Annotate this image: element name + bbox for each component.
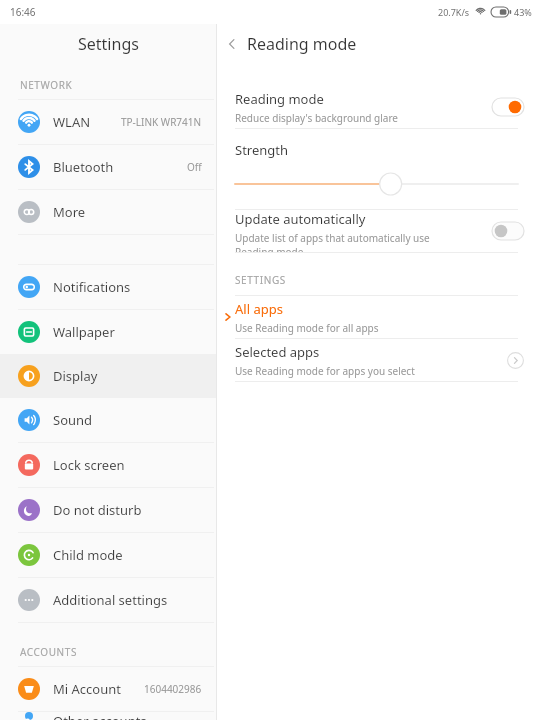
button[interactable]: Display (0, 354, 216, 398)
other: Do not disturb (18, 499, 40, 521)
button[interactable]: Back (217, 29, 247, 59)
staticText: Update list of apps that automatically u… (235, 231, 470, 252)
button[interactable]: Wallpaper (0, 310, 216, 354)
button[interactable]: Toggle on (492, 98, 524, 116)
staticText: Settings (78, 33, 139, 55)
staticText: Additional settings (53, 591, 168, 609)
staticText: 16:46 (10, 5, 36, 19)
staticText: Bluetooth (53, 158, 114, 176)
staticText: Use Reading mode for apps you select (235, 364, 415, 378)
other: More (18, 201, 40, 223)
other: WLAN (18, 111, 40, 133)
staticText: Child mode (53, 546, 123, 564)
staticText: 20.7K/s (438, 6, 470, 18)
other: Wallpaper (18, 321, 40, 343)
other: Bluetooth (18, 156, 40, 178)
staticText: Use Reading mode for all apps (235, 321, 379, 335)
staticText: Selected apps (235, 343, 320, 361)
staticText: NETWORK (20, 78, 73, 92)
staticText: WLAN (53, 113, 91, 131)
other: Notifications (18, 276, 40, 298)
staticText: Mi Account (53, 680, 121, 698)
other: Additional settings (18, 589, 40, 611)
button[interactable]: Mi Account (0, 667, 216, 711)
staticText: Strength (235, 141, 289, 159)
staticText: Sound (53, 411, 93, 429)
button[interactable]: Bluetooth (0, 145, 216, 189)
staticText: Display (53, 367, 98, 385)
other: Display (18, 365, 40, 387)
other: Sound (18, 409, 40, 431)
button[interactable]: Additional settings (0, 578, 216, 622)
other: Child mode (18, 544, 40, 566)
button[interactable]: Update automatically (217, 210, 540, 252)
staticText: 1604402986 (144, 682, 202, 696)
staticText: Reading mode (235, 90, 324, 108)
staticText: Wallpaper (53, 323, 115, 341)
button[interactable]: Open selected apps (507, 352, 524, 369)
button[interactable]: Child mode (0, 533, 216, 577)
button[interactable]: Sound (0, 398, 216, 442)
button[interactable]: Lock screen (0, 443, 216, 487)
staticText: Reading mode (247, 33, 357, 55)
staticText: Lock screen (53, 456, 125, 474)
button[interactable]: Notifications (0, 265, 216, 309)
other: Lock screen (18, 454, 40, 476)
staticText: Reduce display's background glare (235, 111, 398, 125)
button[interactable]: Selected apps (217, 339, 540, 381)
staticText: 43% (514, 6, 532, 18)
staticText: Update automatically (235, 210, 366, 228)
staticText: All apps (235, 300, 283, 318)
other: Other accounts (18, 712, 40, 720)
other: Mi Account (18, 678, 40, 700)
button[interactable]: More (0, 190, 216, 234)
button[interactable]: Toggle off (492, 222, 524, 240)
button[interactable]: Strength slider (217, 171, 540, 197)
button[interactable]: WLAN (0, 100, 216, 144)
button[interactable]: Other accounts (0, 712, 216, 720)
button[interactable]: All apps (217, 296, 540, 338)
staticText: SETTINGS (235, 273, 286, 287)
staticText: Other accounts (53, 712, 147, 720)
button[interactable]: Reading mode (217, 86, 540, 128)
staticText: More (53, 203, 86, 221)
staticText: Off (187, 160, 202, 174)
staticText: TP-LINK WR741N (121, 115, 202, 129)
staticText: ACCOUNTS (20, 645, 77, 659)
button[interactable]: Do not disturb (0, 488, 216, 532)
staticText: Notifications (53, 278, 131, 296)
staticText: Do not disturb (53, 501, 142, 519)
